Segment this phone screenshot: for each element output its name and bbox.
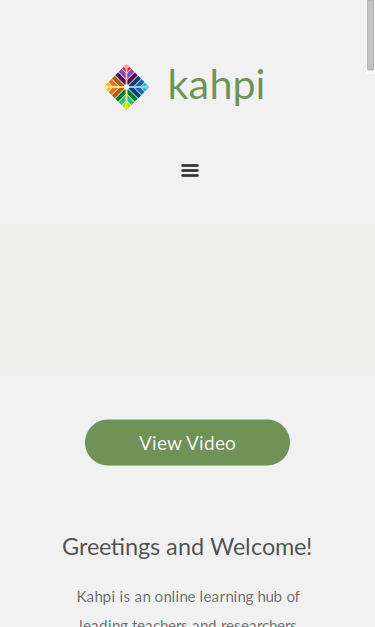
button[interactable]: Open menu	[168, 148, 212, 192]
staticText: kahpi	[167, 58, 265, 108]
staticText: View Video	[139, 431, 236, 454]
staticText: leading teachers and researchers	[79, 616, 297, 627]
staticText: Greetings and Welcome!	[62, 532, 312, 560]
staticText: Kahpi is an online learning hub of	[76, 587, 299, 605]
button[interactable]: View Video	[85, 419, 290, 465]
